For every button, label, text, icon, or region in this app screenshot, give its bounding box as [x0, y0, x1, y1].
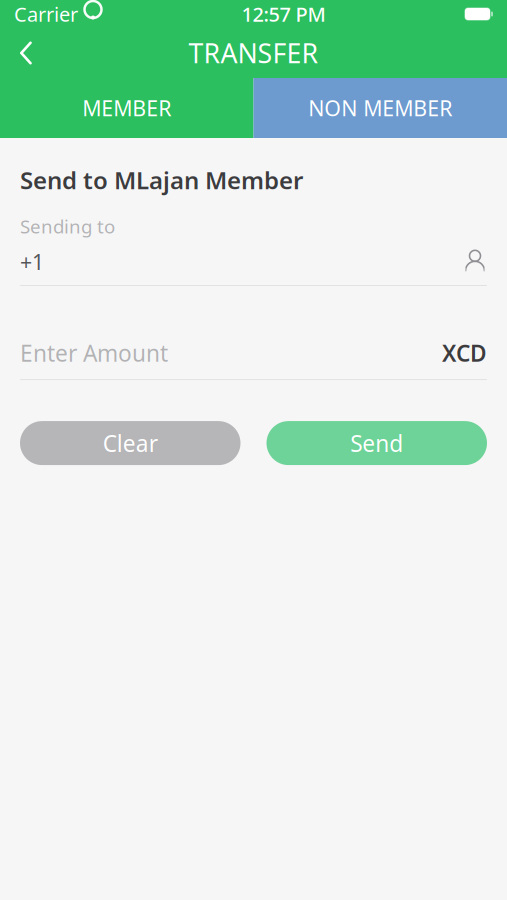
staticText: MEMBER: [82, 94, 171, 122]
staticText: 12:57 PM: [241, 1, 325, 27]
staticText: XCD: [442, 338, 487, 368]
button[interactable]: Back: [4, 31, 48, 75]
staticText: TRANSFER: [188, 35, 318, 71]
staticText: Send to MLajan Member: [20, 164, 303, 196]
staticText: Send: [350, 428, 403, 458]
button[interactable]: Clear: [20, 421, 240, 465]
staticText: NON MEMBER: [308, 94, 452, 122]
staticText: +1: [20, 248, 44, 276]
staticText: Carrier: [14, 1, 78, 27]
staticText: Enter Amount: [20, 338, 168, 368]
button[interactable]: Choose contact: [463, 249, 487, 275]
button[interactable]: NON MEMBER: [253, 78, 507, 138]
staticText: Sending to: [20, 214, 115, 239]
button[interactable]: Send: [266, 421, 487, 465]
button[interactable]: MEMBER: [0, 78, 253, 138]
staticText: Clear: [103, 428, 158, 458]
